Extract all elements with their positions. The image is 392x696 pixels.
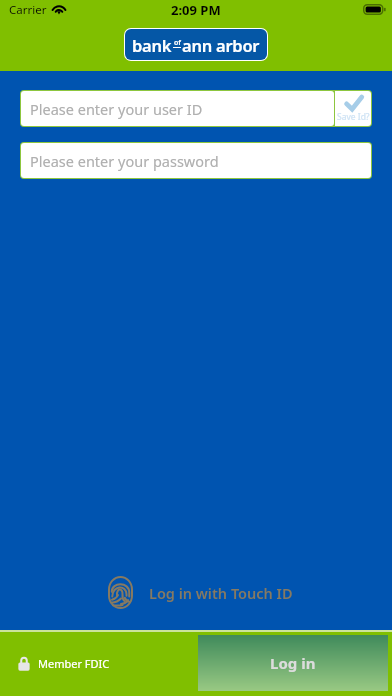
staticText: ann arbor <box>182 34 260 56</box>
staticText: 2:09 PM <box>171 1 221 19</box>
button[interactable]: Member FDIC <box>18 656 110 671</box>
button[interactable]: Please enter your password <box>21 143 371 178</box>
button[interactable]: Please enter your user ID <box>21 91 334 126</box>
staticText: Log in <box>270 653 316 673</box>
staticText: of <box>174 38 181 48</box>
staticText: Please enter your user ID <box>30 99 203 119</box>
staticText: Save Id? <box>337 111 370 123</box>
staticText: bank <box>132 34 172 56</box>
button[interactable]: bank <box>125 29 267 60</box>
staticText: Carrier <box>9 2 47 18</box>
button[interactable]: Log in <box>198 635 388 691</box>
staticText: Member FDIC <box>38 656 110 671</box>
staticText: Please enter your password <box>30 151 219 171</box>
staticText: Log in with Touch ID <box>149 583 293 603</box>
button[interactable]: Log in with Touch ID <box>108 576 293 609</box>
button[interactable]: Save Id <box>335 91 371 126</box>
